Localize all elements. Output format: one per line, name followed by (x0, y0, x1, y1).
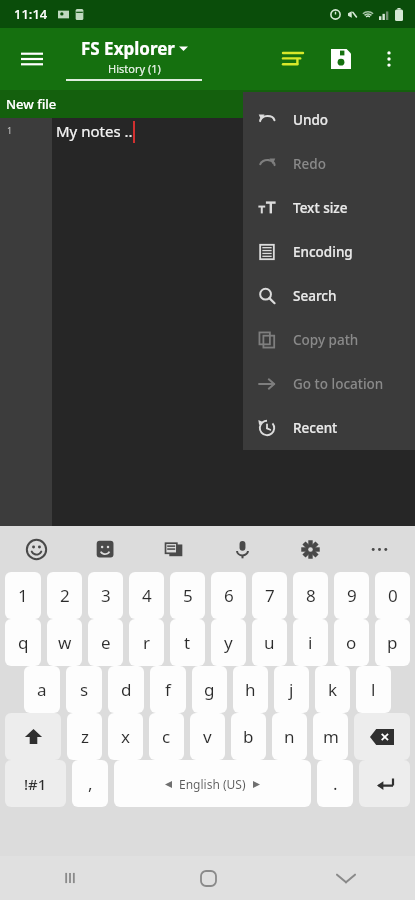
button[interactable]: u (252, 619, 287, 666)
button[interactable]: y (211, 619, 246, 666)
staticText: n (284, 725, 295, 748)
button[interactable]: settings (292, 531, 328, 567)
staticText: x (121, 725, 130, 748)
button[interactable]: b (231, 713, 266, 760)
button[interactable]: emoji (18, 531, 54, 567)
staticText: d (121, 678, 132, 701)
button[interactable]: Backspace (354, 713, 410, 760)
staticText: 7 (265, 584, 275, 607)
button[interactable]: 3 (88, 572, 123, 619)
staticText: 9 (347, 584, 357, 607)
button[interactable]: Encoding (243, 230, 415, 274)
staticText: 4 (142, 584, 152, 607)
button[interactable]: , (72, 760, 108, 807)
staticText: !#1 (24, 774, 47, 794)
staticText: 0 (388, 584, 398, 607)
button[interactable]: d (108, 666, 144, 713)
staticText: English (US) (179, 776, 246, 792)
staticText: Redo (293, 155, 326, 173)
button[interactable]: s (66, 666, 102, 713)
button[interactable]: FS Explorer (66, 37, 202, 81)
button[interactable]: clip (155, 531, 191, 567)
staticText: v (203, 725, 212, 748)
button[interactable]: Toggle word wrap (269, 35, 317, 83)
button[interactable]: v (190, 713, 225, 760)
button[interactable]: a (24, 666, 60, 713)
staticText: 6 (224, 584, 234, 607)
button[interactable]: Recent (243, 406, 415, 450)
button[interactable]: 1 (5, 572, 41, 619)
button[interactable]: Enter (359, 760, 410, 807)
staticText: FS Explorer (81, 37, 175, 60)
button[interactable]: n (272, 713, 307, 760)
staticText: b (243, 725, 254, 748)
button[interactable]: z (67, 713, 102, 760)
button[interactable]: t (170, 619, 205, 666)
staticText: Undo (293, 111, 329, 129)
button[interactable]: 0 (375, 572, 410, 619)
button[interactable]: q (5, 619, 41, 666)
button[interactable]: c (149, 713, 184, 760)
staticText: e (101, 631, 111, 654)
button[interactable]: New file (6, 95, 57, 113)
button[interactable]: Shift (5, 713, 61, 760)
button[interactable]: 8 (293, 572, 328, 619)
button[interactable]: i (293, 619, 328, 666)
staticText: , (88, 772, 93, 795)
button[interactable]: l (356, 666, 391, 713)
staticText: 3 (101, 584, 111, 607)
button[interactable]: More options (365, 35, 413, 83)
staticText: Copy path (293, 331, 359, 349)
staticText: My notes .. (56, 121, 133, 141)
button[interactable]: 5 (170, 572, 205, 619)
button[interactable]: Recent apps (0, 856, 139, 900)
staticText: k (328, 678, 338, 701)
button[interactable]: e (88, 619, 123, 666)
button[interactable]: r (129, 619, 164, 666)
button[interactable]: g (192, 666, 227, 713)
staticText: 2 (60, 584, 70, 607)
button[interactable]: Copy path (243, 318, 415, 362)
staticText: w (58, 631, 72, 654)
button[interactable]: o (334, 619, 369, 666)
button[interactable]: Undo (243, 98, 415, 142)
button[interactable]: Symbols (5, 760, 66, 807)
button[interactable]: k (315, 666, 350, 713)
button[interactable]: 4 (129, 572, 164, 619)
staticText: p (387, 631, 398, 654)
button[interactable]: w (47, 619, 82, 666)
staticText: 1 (18, 584, 28, 607)
button[interactable]: sticker (87, 531, 123, 567)
button[interactable]: 9 (334, 572, 369, 619)
button[interactable]: more (361, 531, 397, 567)
staticText: l (371, 678, 376, 701)
staticText: 11:14 (14, 5, 48, 23)
staticText: c (162, 725, 171, 748)
button[interactable]: p (375, 619, 410, 666)
staticText: t (184, 631, 191, 654)
button[interactable]: h (233, 666, 268, 713)
button[interactable]: j (274, 666, 309, 713)
button[interactable]: x (108, 713, 143, 760)
button[interactable]: f (150, 666, 186, 713)
button[interactable]: Go to location (243, 362, 415, 406)
button[interactable]: Save file (317, 35, 365, 83)
button[interactable]: Search (243, 274, 415, 318)
button[interactable]: m (313, 713, 348, 760)
button[interactable]: English (US) (114, 760, 311, 807)
button[interactable]: mic (224, 531, 260, 567)
button[interactable]: Open navigation drawer (8, 35, 56, 83)
staticText: 8 (306, 584, 316, 607)
button[interactable]: 7 (252, 572, 287, 619)
staticText: Search (293, 287, 337, 305)
staticText: q (18, 631, 29, 654)
button[interactable]: Redo (243, 142, 415, 186)
button[interactable]: 2 (47, 572, 82, 619)
staticText: f (165, 678, 171, 701)
button[interactable]: Text size (243, 186, 415, 230)
staticText: h (245, 678, 256, 701)
button[interactable]: . (317, 760, 353, 807)
button[interactable]: Home (139, 856, 277, 900)
button[interactable]: 6 (211, 572, 246, 619)
button[interactable]: Hide keyboard (277, 856, 415, 900)
